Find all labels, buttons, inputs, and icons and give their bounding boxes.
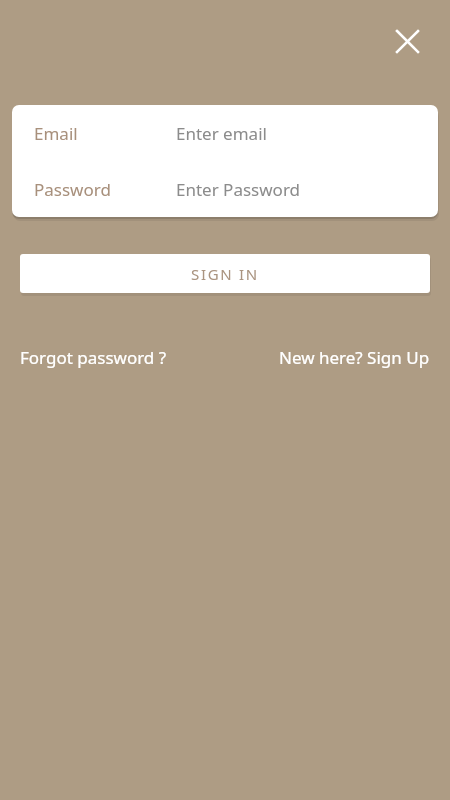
staticText: Password [34, 178, 111, 201]
staticText: Enter email [176, 122, 267, 145]
button[interactable]: Close [383, 17, 431, 65]
button[interactable]: New here? Sign Up [279, 343, 430, 372]
button[interactable]: Email [12, 105, 438, 161]
button[interactable]: SIGN IN [20, 254, 430, 293]
staticText: Forgot password ? [20, 346, 167, 369]
staticText: SIGN IN [191, 264, 259, 284]
staticText: New here? Sign Up [279, 346, 430, 369]
button[interactable]: Forgot password ? [20, 343, 167, 372]
button[interactable]: Password [12, 161, 438, 217]
staticText: Enter Password [176, 178, 301, 201]
staticText: Email [34, 122, 78, 145]
